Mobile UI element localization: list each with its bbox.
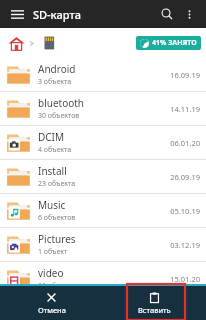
button[interactable]: Отмена [0,286,103,320]
button[interactable]: video [0,262,206,296]
staticText: 03.12.19 [170,240,200,250]
button[interactable]: Pictures [0,228,206,262]
staticText: video [38,266,64,280]
staticText: Music [38,198,66,212]
button[interactable]: Menu [6,3,28,25]
staticText: Вставить [138,305,171,315]
staticText: DCIM [38,130,65,144]
staticText: 30 объектов [38,111,80,121]
button[interactable]: Android [0,58,206,92]
staticText: 3 объекта [38,77,72,87]
staticText: 06.01.20 [170,138,200,148]
button[interactable]: Search [156,3,178,25]
staticText: Install [38,164,67,178]
staticText: 1 объект [38,247,68,257]
staticText: 41% ЗАНЯТО [152,38,197,48]
staticText: Android [38,62,76,76]
button[interactable]: More options [179,4,199,24]
staticText: 11 объектов [38,281,80,291]
staticText: 23 объекта [38,179,76,189]
button[interactable]: SD card [37,31,61,55]
button[interactable]: Install [0,160,206,194]
staticText: 15.01.20 [170,274,200,284]
staticText: Отмена [38,305,66,315]
button[interactable]: Music [0,194,206,228]
button[interactable]: bluetooth [0,92,206,126]
button[interactable]: DCIM [0,126,206,160]
staticText: 16.09.19 [170,70,200,80]
staticText: 05.10.19 [170,206,200,216]
staticText: Pictures [38,232,76,246]
staticText: 26.09.19 [170,172,200,182]
button[interactable]: Home [4,31,28,55]
staticText: 4 объекта [38,145,72,155]
button[interactable]: 41% ЗАНЯТО [136,36,201,50]
staticText: 6 объектов [38,213,76,223]
staticText: bluetooth [38,96,85,110]
staticText: 14.11.19 [170,104,200,114]
staticText: SD-карта [33,7,81,22]
button[interactable]: Вставить [103,286,206,320]
